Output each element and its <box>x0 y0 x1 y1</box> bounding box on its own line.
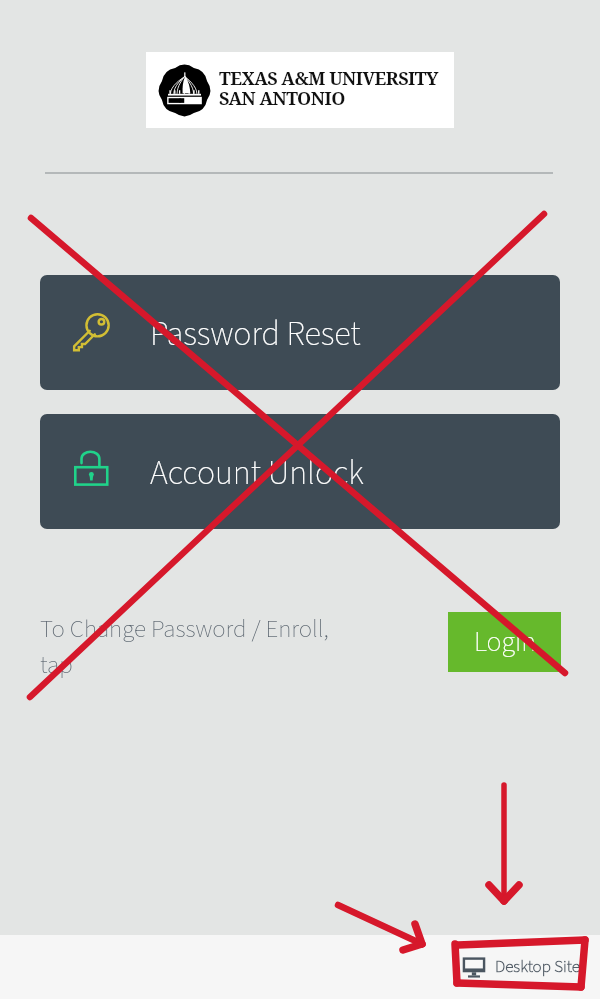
button[interactable]: Password Reset <box>40 275 560 390</box>
staticText: To Change Password / Enroll, tap <box>40 611 340 683</box>
staticText: Password Reset <box>150 310 361 358</box>
staticText: Desktop Site <box>495 955 580 979</box>
button[interactable]: Login <box>448 612 561 672</box>
staticText: SAN ANTONIO <box>219 86 345 111</box>
staticText: Login <box>474 622 536 662</box>
staticText: TEXAS A&M UNIVERSITY <box>219 66 438 91</box>
staticText: Account Unlock <box>150 449 364 497</box>
button[interactable]: Account Unlock <box>40 414 560 529</box>
other: Desktop Site <box>462 955 486 979</box>
button[interactable]: Desktop Site <box>455 943 580 991</box>
